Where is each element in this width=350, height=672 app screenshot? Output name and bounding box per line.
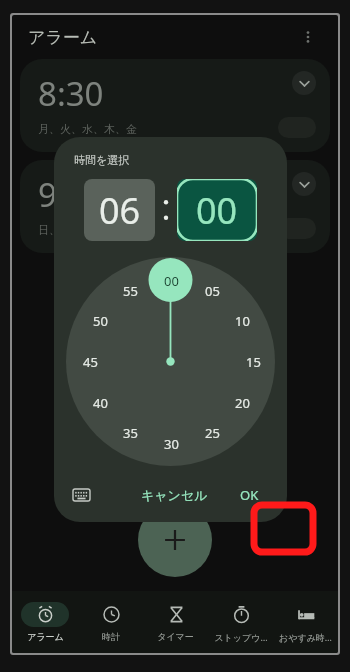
button[interactable]: 30 <box>156 429 186 459</box>
button[interactable]: More options <box>294 23 322 51</box>
button[interactable]: 10 <box>227 306 257 336</box>
staticText: キャンセル <box>141 487 208 503</box>
button[interactable]: Toggle alarm <box>278 218 316 239</box>
button[interactable]: 9:00 <box>20 160 330 253</box>
button[interactable]: 20 <box>227 388 257 418</box>
staticText: タイマー <box>157 631 194 642</box>
button[interactable]: おやすみ時… <box>273 591 338 653</box>
staticText: 55 <box>123 282 138 300</box>
button[interactable]: 8:30 <box>20 59 330 152</box>
staticText: 06 <box>99 186 141 235</box>
staticText: ストップウ… <box>214 631 268 643</box>
staticText: 45 <box>83 353 98 371</box>
staticText: 50 <box>93 312 108 330</box>
staticText: 00 <box>164 272 179 290</box>
staticText: 15 <box>246 353 261 371</box>
staticText: 20 <box>235 394 250 412</box>
button[interactable]: 00 <box>177 179 257 241</box>
button[interactable]: キャンセル <box>131 481 218 509</box>
staticText: 30 <box>164 435 179 453</box>
button[interactable]: 35 <box>115 418 145 448</box>
button[interactable]: Keyboard input <box>68 482 94 508</box>
staticText: 10 <box>235 312 250 330</box>
staticText: 00 <box>196 186 238 235</box>
button[interactable]: Expand <box>292 71 316 95</box>
button[interactable]: Expand <box>292 172 316 196</box>
button[interactable]: 00 <box>156 266 186 296</box>
staticText: 05 <box>205 282 220 300</box>
staticText: 8:30 <box>38 71 104 116</box>
button[interactable]: 55 <box>115 276 145 306</box>
button[interactable]: アラーム <box>12 591 78 653</box>
staticText: 35 <box>123 424 138 442</box>
button[interactable]: Toggle alarm <box>278 117 316 138</box>
button[interactable]: 40 <box>85 388 115 418</box>
button[interactable]: 05 <box>197 276 227 306</box>
button[interactable]: 時計 <box>78 591 143 653</box>
staticText: 40 <box>93 394 108 412</box>
staticText: 9:00 <box>38 172 104 217</box>
staticText: アラーム <box>27 631 64 642</box>
button[interactable]: 25 <box>197 418 227 448</box>
staticText: アラーム <box>28 27 98 48</box>
staticText: おやすみ時… <box>279 631 332 643</box>
button[interactable]: ストップウ… <box>208 591 273 653</box>
button[interactable]: 06 <box>84 179 155 241</box>
button[interactable]: 45 <box>75 347 105 377</box>
button[interactable]: 50 <box>85 306 115 336</box>
staticText: 時計 <box>102 631 120 642</box>
staticText: 25 <box>205 424 220 442</box>
staticText: 日、土 <box>38 223 71 237</box>
button[interactable]: タイマー <box>143 591 208 653</box>
staticText: 時間を選択 <box>74 153 130 167</box>
staticText: OK <box>240 486 259 504</box>
button[interactable]: 15 <box>238 347 268 377</box>
button[interactable]: OK <box>224 480 275 510</box>
button[interactable]: Add alarm <box>138 503 212 577</box>
staticText: 月、火、水、木、金 <box>38 122 137 136</box>
